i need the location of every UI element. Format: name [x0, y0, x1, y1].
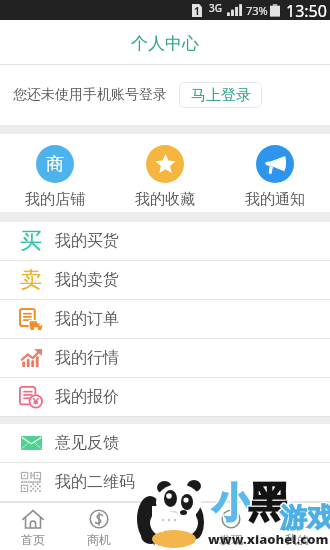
- staticText: 小: [212, 479, 252, 529]
- staticText: 黑: [247, 476, 289, 529]
- staticText: 小: [211, 477, 251, 527]
- staticText: www.xiaohei.com: [208, 530, 329, 548]
- staticText: 首页: [21, 532, 45, 547]
- staticText: 马上登录: [191, 86, 251, 105]
- staticText: 我的二维码: [55, 472, 135, 492]
- staticText: 黑: [247, 478, 289, 531]
- button[interactable]: 卖: [0, 261, 330, 299]
- button[interactable]: 买: [0, 222, 330, 260]
- staticText: 我的收藏: [135, 190, 195, 209]
- button[interactable]: 发现: [198, 503, 264, 550]
- staticText: 13:50: [286, 0, 327, 20]
- button[interactable]: 我的通知: [241, 145, 309, 209]
- staticText: 买: [20, 227, 42, 255]
- button[interactable]: 我的行情: [0, 339, 330, 377]
- button[interactable]: 您还未使用手机账号登录: [0, 65, 330, 125]
- staticText: 我的卖货: [55, 270, 119, 290]
- button[interactable]: 我的: [264, 503, 330, 550]
- staticText: 黑: [248, 476, 290, 529]
- staticText: 1: [194, 4, 200, 17]
- staticText: 黑: [249, 478, 291, 531]
- staticText: 游戏: [279, 501, 330, 535]
- button[interactable]: 消息: [132, 503, 198, 550]
- staticText: 我的报价: [55, 387, 119, 407]
- button[interactable]: 马上登录: [179, 82, 262, 108]
- staticText: 我的店铺: [25, 190, 85, 209]
- staticText: 游戏: [280, 502, 330, 536]
- staticText: 游戏: [281, 502, 330, 536]
- staticText: 3G: [209, 1, 222, 15]
- staticText: 游戏: [279, 500, 330, 534]
- staticText: 黑: [249, 477, 291, 530]
- staticText: 商机: [87, 532, 111, 547]
- staticText: 我的行情: [55, 348, 119, 368]
- staticText: 73%: [246, 3, 268, 18]
- staticText: 游戏: [281, 500, 330, 534]
- staticText: 黑: [249, 476, 291, 529]
- staticText: 小: [212, 477, 252, 527]
- staticText: 我的: [285, 532, 309, 547]
- button[interactable]: 我的订单: [0, 300, 330, 338]
- staticText: 您还未使用手机账号登录: [13, 86, 167, 104]
- staticText: 我的买货: [55, 231, 119, 251]
- staticText: 我的订单: [55, 309, 119, 329]
- staticText: 小: [213, 477, 253, 527]
- button[interactable]: 意见反馈: [0, 424, 330, 462]
- button[interactable]: 商: [21, 145, 89, 209]
- button[interactable]: 首页: [0, 503, 66, 550]
- staticText: 商: [46, 153, 64, 176]
- staticText: 小: [213, 479, 253, 529]
- staticText: 游戏: [281, 501, 330, 535]
- staticText: 黑: [248, 478, 290, 531]
- button[interactable]: 我的二维码: [0, 463, 330, 501]
- staticText: 我的通知: [245, 190, 305, 209]
- button[interactable]: 我的收藏: [131, 145, 199, 209]
- staticText: 小: [212, 478, 252, 528]
- staticText: 黑: [248, 477, 290, 530]
- staticText: 小: [211, 478, 251, 528]
- staticText: 游戏: [280, 501, 330, 535]
- staticText: 小: [213, 478, 253, 528]
- staticText: 发现: [219, 532, 243, 547]
- staticText: 游戏: [279, 502, 330, 536]
- button[interactable]: 我的报价: [0, 378, 330, 416]
- button[interactable]: 商机: [66, 503, 132, 550]
- staticText: 黑: [247, 477, 289, 530]
- staticText: 消息: [153, 532, 177, 547]
- staticText: 游戏: [280, 500, 330, 534]
- staticText: 卖: [20, 266, 42, 294]
- staticText: 小: [211, 479, 251, 529]
- staticText: 意见反馈: [55, 433, 119, 453]
- staticText: 个人中心: [131, 33, 199, 54]
